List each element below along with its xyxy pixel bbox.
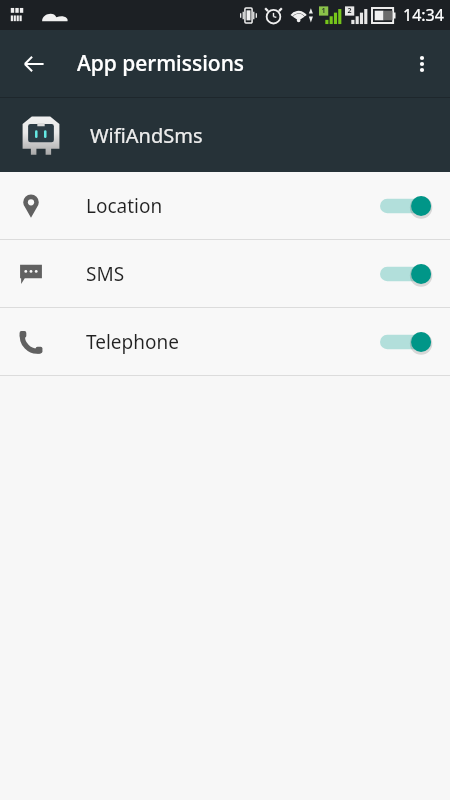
button[interactable]: Telephone xyxy=(0,308,450,375)
button[interactable]: WifiAndSms xyxy=(0,98,450,172)
button[interactable]: Back xyxy=(10,40,58,88)
staticText: 14:34 xyxy=(403,4,444,26)
staticText: Telephone xyxy=(86,329,179,355)
button[interactable]: Toggle permission xyxy=(380,257,432,291)
staticText: WifiAndSms xyxy=(90,122,203,149)
button[interactable]: SMS xyxy=(0,240,450,307)
button[interactable]: Location xyxy=(0,172,450,239)
button[interactable]: Toggle permission xyxy=(380,325,432,359)
staticText: 2 xyxy=(345,6,354,16)
staticText: 1 xyxy=(319,6,328,16)
staticText: SMS xyxy=(86,261,125,287)
staticText: App permissions xyxy=(77,49,245,78)
button[interactable]: Toggle permission xyxy=(380,189,432,223)
button[interactable]: More options xyxy=(398,40,446,88)
staticText: Location xyxy=(86,193,163,219)
